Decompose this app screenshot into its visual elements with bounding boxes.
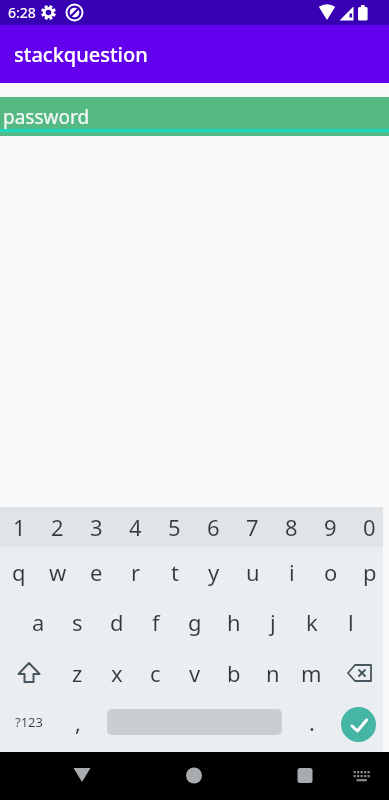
- button[interactable]: q: [0, 547, 38, 597]
- staticText: z: [72, 658, 83, 688]
- staticText: d: [110, 607, 124, 637]
- button[interactable]: [341, 707, 376, 742]
- button[interactable]: k: [292, 597, 331, 647]
- staticText: r: [131, 557, 141, 587]
- button[interactable]: [331, 699, 389, 745]
- staticText: f: [152, 607, 160, 637]
- staticText: n: [266, 658, 280, 688]
- button[interactable]: i: [272, 547, 311, 597]
- button[interactable]: r: [116, 547, 155, 597]
- button[interactable]: [331, 647, 389, 699]
- button[interactable]: stackquestion: [0, 25, 389, 83]
- button[interactable]: p: [350, 547, 389, 597]
- button[interactable]: d: [97, 597, 136, 647]
- button[interactable]: m: [292, 647, 331, 699]
- button[interactable]: [129, 752, 259, 800]
- staticText: .: [309, 707, 315, 737]
- staticText: 3: [90, 512, 103, 542]
- button[interactable]: [0, 752, 129, 800]
- button[interactable]: n: [253, 647, 292, 699]
- staticText: u: [246, 557, 260, 587]
- staticText: ?123: [15, 713, 43, 731]
- button[interactable]: u: [233, 547, 272, 597]
- staticText: m: [301, 658, 322, 688]
- button[interactable]: j: [253, 597, 292, 647]
- button[interactable]: e: [77, 547, 116, 597]
- staticText: o: [324, 557, 338, 587]
- staticText: 9: [324, 512, 337, 542]
- button[interactable]: l: [331, 597, 370, 647]
- button[interactable]: [0, 647, 58, 699]
- staticText: 6: [207, 512, 220, 542]
- button[interactable]: g: [175, 597, 214, 647]
- staticText: 5: [168, 512, 181, 542]
- staticText: t: [171, 557, 179, 587]
- staticText: q: [12, 557, 26, 587]
- button[interactable]: 8: [272, 507, 311, 547]
- button[interactable]: w: [38, 547, 77, 597]
- staticText: g: [188, 607, 202, 637]
- button[interactable]: b: [214, 647, 253, 699]
- button[interactable]: a: [19, 597, 58, 647]
- staticText: s: [72, 607, 83, 637]
- button[interactable]: 3: [77, 507, 116, 547]
- button[interactable]: ?123: [0, 699, 58, 745]
- staticText: stackquestion: [14, 41, 148, 68]
- staticText: 2: [51, 512, 64, 542]
- button[interactable]: 0: [350, 507, 389, 547]
- button[interactable]: [97, 699, 292, 745]
- button[interactable]: y: [194, 547, 233, 597]
- button[interactable]: 2: [38, 507, 77, 547]
- button[interactable]: v: [175, 647, 214, 699]
- staticText: e: [90, 557, 103, 587]
- staticText: a: [32, 607, 45, 637]
- staticText: x: [111, 658, 123, 688]
- button[interactable]: c: [136, 647, 175, 699]
- button[interactable]: s: [58, 597, 97, 647]
- staticText: w: [49, 557, 67, 587]
- button[interactable]: 7: [233, 507, 272, 547]
- staticText: i: [289, 557, 295, 587]
- staticText: j: [270, 607, 276, 637]
- staticText: password: [3, 104, 90, 130]
- staticText: 8: [285, 512, 298, 542]
- button[interactable]: password: [0, 97, 389, 136]
- button[interactable]: 9: [311, 507, 350, 547]
- staticText: c: [150, 658, 161, 688]
- button[interactable]: z: [58, 647, 97, 699]
- staticText: 1: [13, 512, 26, 542]
- staticText: 4: [129, 512, 142, 542]
- staticText: b: [227, 658, 241, 688]
- button[interactable]: t: [155, 547, 194, 597]
- button[interactable]: 5: [155, 507, 194, 547]
- button[interactable]: .: [292, 699, 331, 745]
- button[interactable]: f: [136, 597, 175, 647]
- staticText: v: [189, 658, 201, 688]
- button[interactable]: o: [311, 547, 350, 597]
- staticText: 0: [363, 512, 376, 542]
- staticText: h: [227, 607, 241, 637]
- button[interactable]: ,: [58, 699, 97, 745]
- button[interactable]: 6: [194, 507, 233, 547]
- staticText: 6:28: [8, 3, 36, 22]
- button[interactable]: [259, 752, 389, 800]
- button[interactable]: x: [97, 647, 136, 699]
- button[interactable]: h: [214, 597, 253, 647]
- button[interactable]: 4: [116, 507, 155, 547]
- staticText: k: [306, 607, 318, 637]
- staticText: ,: [75, 707, 81, 737]
- staticText: p: [363, 557, 377, 587]
- staticText: 7: [246, 512, 259, 542]
- button[interactable]: 1: [0, 507, 38, 547]
- staticText: y: [208, 557, 220, 587]
- staticText: l: [348, 607, 354, 637]
